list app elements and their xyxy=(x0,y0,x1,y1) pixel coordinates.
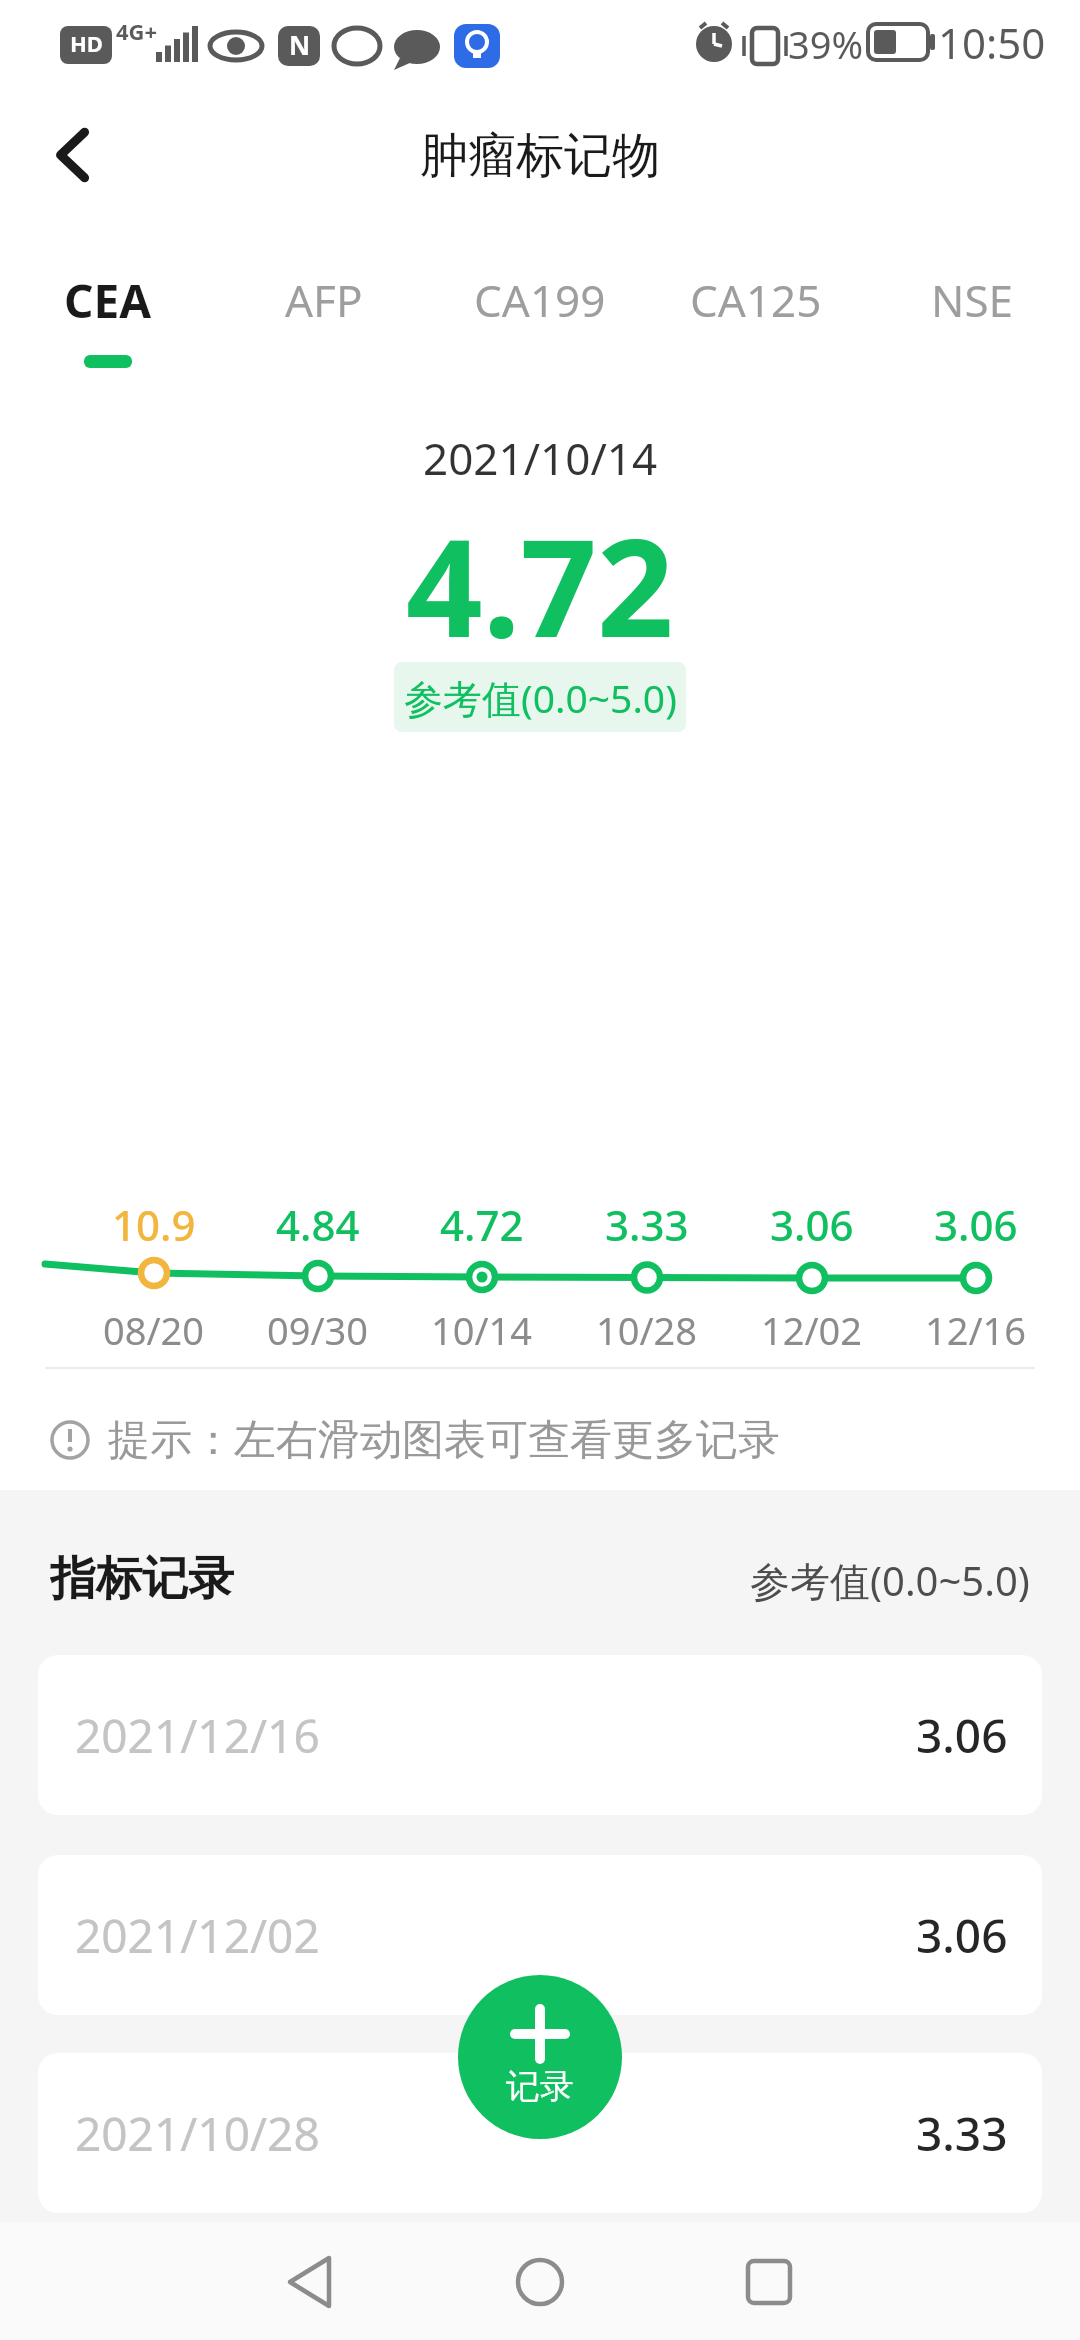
button[interactable] xyxy=(515,2257,565,2307)
staticText: 3.33 xyxy=(916,2102,1008,2165)
button[interactable]: 2021/12/16 xyxy=(38,1655,1042,1815)
staticText: 3.33 xyxy=(605,1196,689,1248)
staticText: 4.72 xyxy=(406,494,674,664)
staticText: 09/30 xyxy=(267,1304,369,1352)
button[interactable] xyxy=(285,2255,335,2309)
staticText: 3.06 xyxy=(916,1704,1008,1767)
staticText: 肿瘤标记物 xyxy=(420,126,660,186)
staticText: 10/14 xyxy=(431,1304,533,1352)
staticText: 参考值(0.0~5.0) xyxy=(750,1553,1030,1605)
button[interactable] xyxy=(50,125,98,185)
staticText: 4.72 xyxy=(440,1196,524,1248)
staticText: 4G+ xyxy=(116,16,158,46)
staticText: CEA xyxy=(64,269,152,332)
staticText: 2021/10/14 xyxy=(423,428,658,482)
staticText: 39% xyxy=(788,18,864,70)
button[interactable]: CEA xyxy=(0,258,216,342)
staticText: HD xyxy=(70,28,103,58)
button[interactable]: 2021/10/28 xyxy=(38,2053,1042,2213)
staticText: 10/28 xyxy=(596,1304,698,1352)
staticText: 提示：左右滑动图表可查看更多记录 xyxy=(108,1414,780,1466)
staticText: AFP xyxy=(285,270,363,330)
staticText: 指标记录 xyxy=(50,1550,234,1606)
button[interactable]: AFP xyxy=(216,258,432,342)
staticText: CA199 xyxy=(474,270,606,330)
button[interactable]: CA125 xyxy=(648,258,864,342)
staticText: NSE xyxy=(931,270,1014,330)
staticText: 12/16 xyxy=(925,1304,1027,1352)
button[interactable]: NSE xyxy=(864,258,1080,342)
button[interactable]: 记录 xyxy=(458,1975,622,2139)
staticText: CA125 xyxy=(690,270,822,330)
button[interactable]: 2021/12/02 xyxy=(38,1855,1042,2015)
staticText: 参考值(0.0~5.0) xyxy=(404,671,677,724)
staticText: 10.9 xyxy=(112,1196,196,1248)
staticText: 10:50 xyxy=(938,14,1046,71)
staticText: 3.06 xyxy=(770,1196,854,1248)
staticText: 3.06 xyxy=(934,1196,1018,1248)
staticText: 2021/12/16 xyxy=(75,1704,320,1767)
staticText: 3.06 xyxy=(916,1904,1008,1967)
staticText: N xyxy=(289,27,311,62)
button[interactable]: CA199 xyxy=(432,258,648,342)
staticText: 记录 xyxy=(506,2065,574,2108)
staticText: 08/20 xyxy=(103,1304,205,1352)
staticText: 4.84 xyxy=(276,1196,360,1248)
staticText: 12/02 xyxy=(761,1304,863,1352)
button[interactable] xyxy=(746,2259,792,2305)
staticText: 2021/10/28 xyxy=(75,2102,320,2165)
staticText: 2021/12/02 xyxy=(75,1904,320,1967)
